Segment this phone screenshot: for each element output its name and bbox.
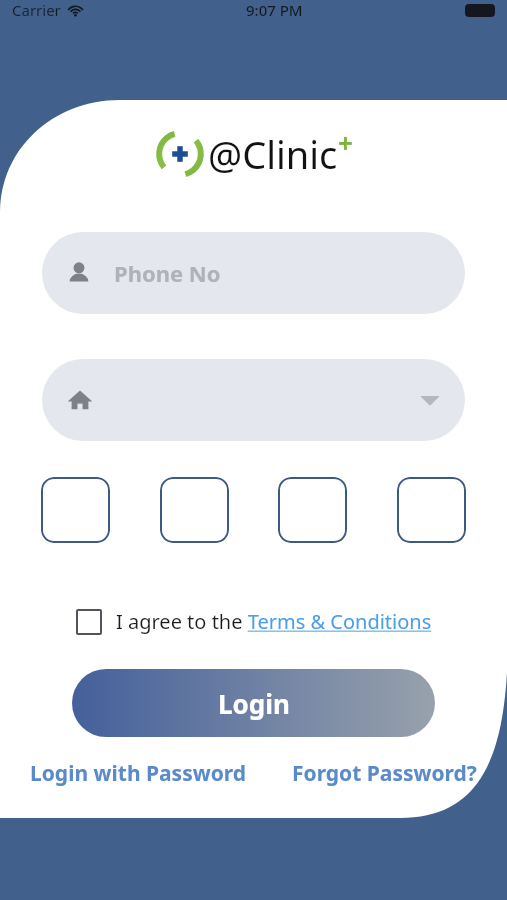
button[interactable]: OTP digit bbox=[160, 477, 229, 543]
staticText: Login bbox=[218, 686, 290, 721]
button[interactable]: I agree to the Terms & Conditions bbox=[116, 608, 432, 635]
button[interactable]: OTP digit bbox=[397, 477, 466, 543]
button[interactable]: Login with Password bbox=[30, 759, 247, 788]
button[interactable]: Agree checkbox bbox=[76, 609, 102, 635]
staticText: Phone No bbox=[114, 258, 221, 288]
button[interactable]: OTP digit bbox=[41, 477, 110, 543]
staticText: 9:07 PM bbox=[246, 0, 303, 20]
button[interactable]: Forgot Password? bbox=[292, 759, 477, 788]
staticText: + bbox=[338, 125, 353, 160]
button[interactable]: OTP digit bbox=[278, 477, 347, 543]
staticText: @Clinic bbox=[208, 128, 338, 180]
staticText: Carrier bbox=[12, 0, 61, 20]
button[interactable]: Select clinic bbox=[42, 359, 465, 441]
button[interactable]: Phone No bbox=[42, 232, 465, 314]
button[interactable]: Login bbox=[72, 669, 435, 737]
